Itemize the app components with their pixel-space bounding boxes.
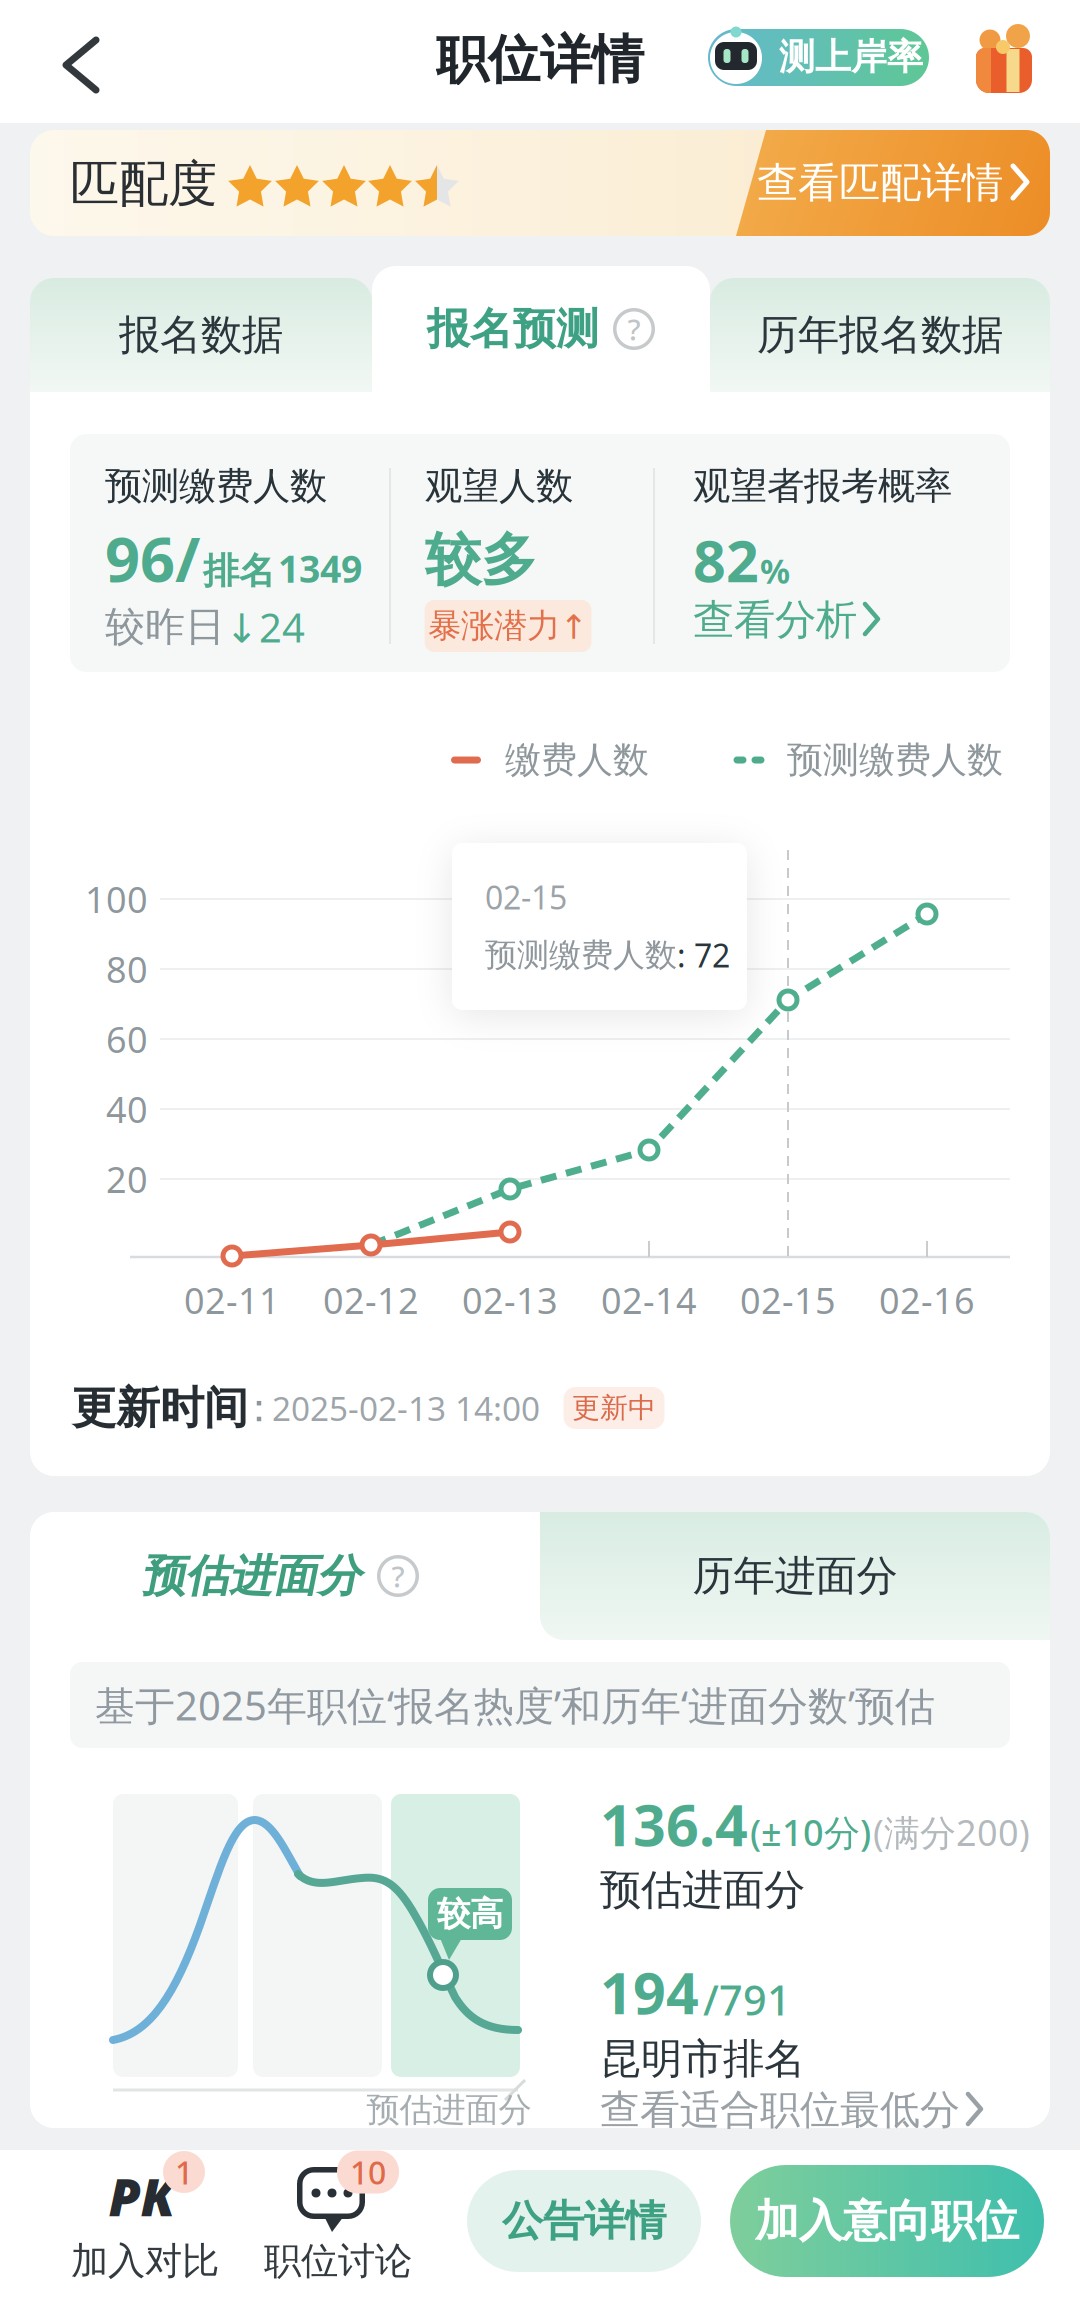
staticText: 更新中 [572, 1391, 656, 1425]
staticText: 02-14 [601, 1276, 697, 1324]
button[interactable]: 报名预测 [372, 266, 710, 392]
staticText: 02-15 [740, 1276, 836, 1324]
staticText: 较高 [437, 1893, 503, 1934]
staticText: 匹配度 [70, 154, 217, 214]
button[interactable]: 历年进面分 [540, 1512, 1050, 1640]
button[interactable]: 报名数据 [30, 278, 372, 392]
staticText: 预估进面分 [600, 1865, 805, 1915]
staticText: 40 [106, 1085, 148, 1133]
staticText: 加入对比 [71, 2238, 219, 2284]
staticText: 查看匹配详情 [757, 158, 1003, 208]
staticText: PK [108, 2161, 175, 2231]
staticText: 预测缴费人数 [105, 463, 327, 509]
button[interactable]: 公告详情 [467, 2170, 701, 2272]
button[interactable]: 礼包 [972, 23, 1036, 93]
button[interactable]: 加入意向职位 [730, 2165, 1044, 2277]
staticText: 历年进面分 [692, 1551, 897, 1601]
staticText: /791 [703, 1972, 791, 2027]
staticText: 暴涨潜力↑ [428, 605, 588, 646]
staticText: 82 [693, 522, 759, 598]
staticText: 预测缴费人数 [787, 738, 1003, 782]
button[interactable]: 查看匹配详情 [736, 130, 1050, 236]
staticText: 查看分析 [693, 595, 857, 645]
staticText: 观望人数 [425, 463, 573, 509]
staticText: 02-12 [323, 1276, 419, 1324]
staticText: 排名 [203, 549, 275, 593]
button[interactable]: PK [80, 2150, 210, 2282]
staticText: 预测缴费人数 [485, 935, 677, 975]
staticText: ? [627, 309, 640, 348]
staticText: 观望者报考概率 [693, 463, 952, 509]
button[interactable]: 测上岸率 [708, 29, 929, 86]
staticText: (满分200) [873, 1808, 1030, 1856]
staticText: 02-13 [462, 1276, 558, 1324]
staticText: 更新时间 [72, 1381, 248, 1435]
staticText: 194 [600, 1954, 699, 2030]
button[interactable]: 历年报名数据 [710, 278, 1050, 392]
staticText: 02-11 [184, 1276, 280, 1324]
staticText: 02-15 [485, 876, 567, 918]
staticText: 查看适合职位最低分 [600, 2085, 960, 2134]
button[interactable]: 10 [280, 2150, 410, 2282]
staticText: 预估进面分 [366, 2089, 531, 2130]
staticText: 缴费人数 [505, 738, 649, 782]
staticText: 较多 [425, 526, 537, 594]
staticText: ： [239, 1383, 279, 1432]
staticText: 报名预测 [427, 303, 599, 355]
staticText: 20 [106, 1155, 148, 1203]
staticText: 报名数据 [119, 310, 283, 360]
button[interactable]: 查看适合职位最低分 [600, 2086, 1040, 2134]
staticText: 02-16 [879, 1276, 975, 1324]
staticText: 职位详情 [436, 28, 644, 92]
button[interactable]: 查看分析 [693, 595, 993, 645]
staticText: 60 [106, 1015, 148, 1063]
staticText: 2025-02-13 14:00 [272, 1386, 540, 1430]
staticText: 昆明市排名 [600, 2034, 805, 2084]
staticText: 10 [350, 2151, 386, 2193]
staticText: 1 [175, 2151, 193, 2193]
button[interactable]: 预估进面分 [60, 1512, 500, 1640]
staticText: 100 [85, 875, 148, 923]
staticText: 96/ [105, 518, 200, 599]
staticText: 预估进面分 [141, 1549, 361, 1603]
staticText: 职位讨论 [264, 2238, 412, 2284]
staticText: 较昨日 [105, 602, 225, 651]
staticText: 加入意向职位 [755, 2194, 1019, 2248]
staticText: 1349 [278, 543, 362, 593]
staticText: 公告详情 [502, 2196, 666, 2246]
button[interactable]: Back [10, 5, 120, 115]
staticText: ? [391, 1556, 404, 1595]
staticText: 测上岸率 [779, 35, 923, 79]
staticText: : 72 [677, 934, 730, 976]
staticText: % [760, 549, 790, 593]
staticText: (±10分) [750, 1808, 871, 1856]
staticText: 历年报名数据 [757, 310, 1003, 360]
staticText: 136.4 [600, 1786, 748, 1862]
staticText: 基于2025年职位‘报名热度’和历年‘进面分数’预估 [95, 1678, 935, 1731]
staticText: 80 [106, 945, 148, 993]
staticText: ↓24 [225, 600, 305, 653]
